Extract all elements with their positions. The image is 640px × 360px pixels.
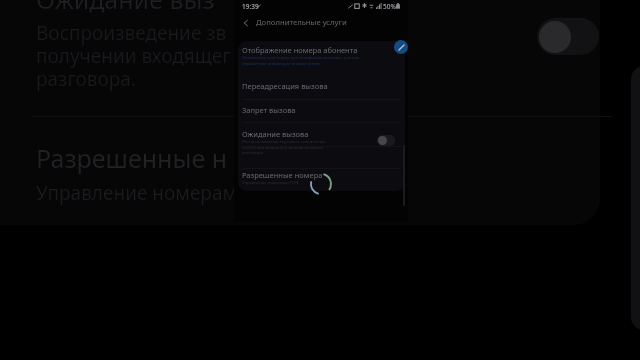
staticText: Дополнительные услуги [256,17,347,27]
staticText: Разрешенные н [36,141,228,175]
button[interactable]: Ожидание вызова [242,129,392,155]
staticText: Воспроизведение звукового сигнала при по… [242,139,326,155]
button[interactable]: Отображение номера абонента [242,45,392,66]
staticText: Разрешенные номера [242,170,323,180]
staticText: Переадресация вызова [242,81,328,91]
staticText: 19:39 [242,2,259,11]
staticText: Управление номерами FDN [242,180,299,186]
staticText: Ожидание выз [36,0,215,16]
button[interactable]: Call waiting toggle [377,135,395,146]
button[interactable]: Call waiting switch [537,18,599,55]
staticText: Показывать мой номер при исходящих вызов… [242,55,359,66]
staticText: Ожидание вызова [242,129,309,139]
staticText: Управление номерам [36,180,238,206]
staticText: Воспроизведение зв получении входящег ра… [36,20,231,92]
staticText: Отображение номера абонента [242,45,358,55]
button[interactable]: Запрет вызова [242,105,392,115]
button[interactable]: Разрешенные номера [242,170,392,186]
staticText: 50% [383,2,396,11]
button[interactable]: Edit [394,40,408,54]
button[interactable]: Back [239,16,252,29]
staticText: Запрет вызова [242,105,296,115]
button[interactable]: Переадресация вызова [242,81,392,91]
